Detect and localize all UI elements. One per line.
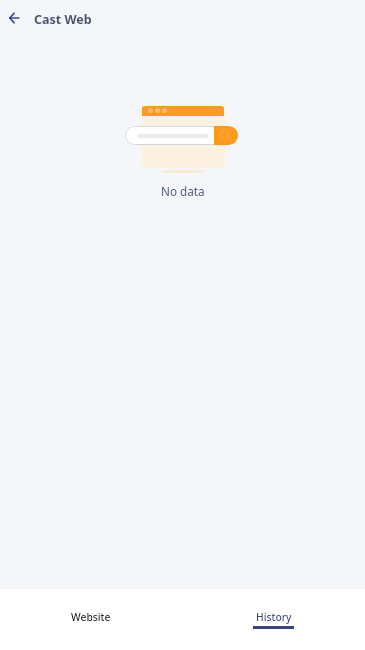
staticText: Cast Web	[34, 11, 92, 28]
staticText: No data	[161, 183, 205, 199]
button[interactable]: Website	[0, 589, 182, 650]
button[interactable]: Back	[0, 0, 36, 36]
staticText: Website	[71, 610, 111, 624]
staticText: History	[256, 610, 292, 624]
button[interactable]: History	[182, 589, 365, 650]
